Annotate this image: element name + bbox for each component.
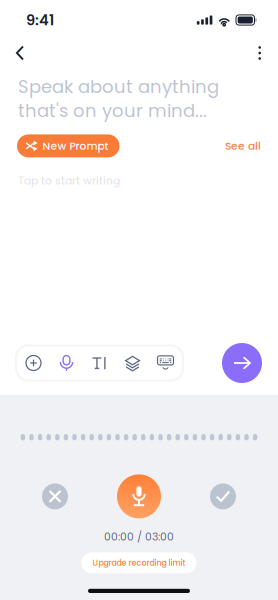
button[interactable]: Record	[117, 474, 161, 518]
button[interactable]: Text formatting	[83, 346, 116, 379]
button[interactable]: Templates	[116, 346, 149, 379]
button[interactable]: Cancel recording	[42, 483, 68, 509]
button[interactable]: See all	[225, 138, 261, 153]
staticText: Tap to start writing	[18, 173, 120, 188]
button[interactable]: Keyboard	[149, 346, 182, 379]
button[interactable]: Add attachment	[17, 346, 50, 379]
button[interactable]: Back	[16, 40, 46, 66]
staticText: 9:41	[26, 10, 54, 30]
button[interactable]: Voice input	[50, 346, 83, 379]
staticText: New Prompt	[42, 138, 108, 153]
button[interactable]: Submit	[222, 343, 262, 383]
staticText: See all	[225, 138, 261, 153]
button[interactable]: More options	[231, 40, 261, 66]
staticText: Speak about anything	[18, 74, 219, 99]
button[interactable]: Finish recording	[210, 483, 236, 509]
staticText: that's on your mind...	[18, 98, 207, 123]
button[interactable]: Upgrade recording limit	[81, 552, 196, 573]
staticText: Upgrade recording limit	[92, 557, 185, 568]
button[interactable]: New Prompt	[17, 134, 119, 157]
staticText: 00:00 / 03:00	[104, 529, 174, 544]
